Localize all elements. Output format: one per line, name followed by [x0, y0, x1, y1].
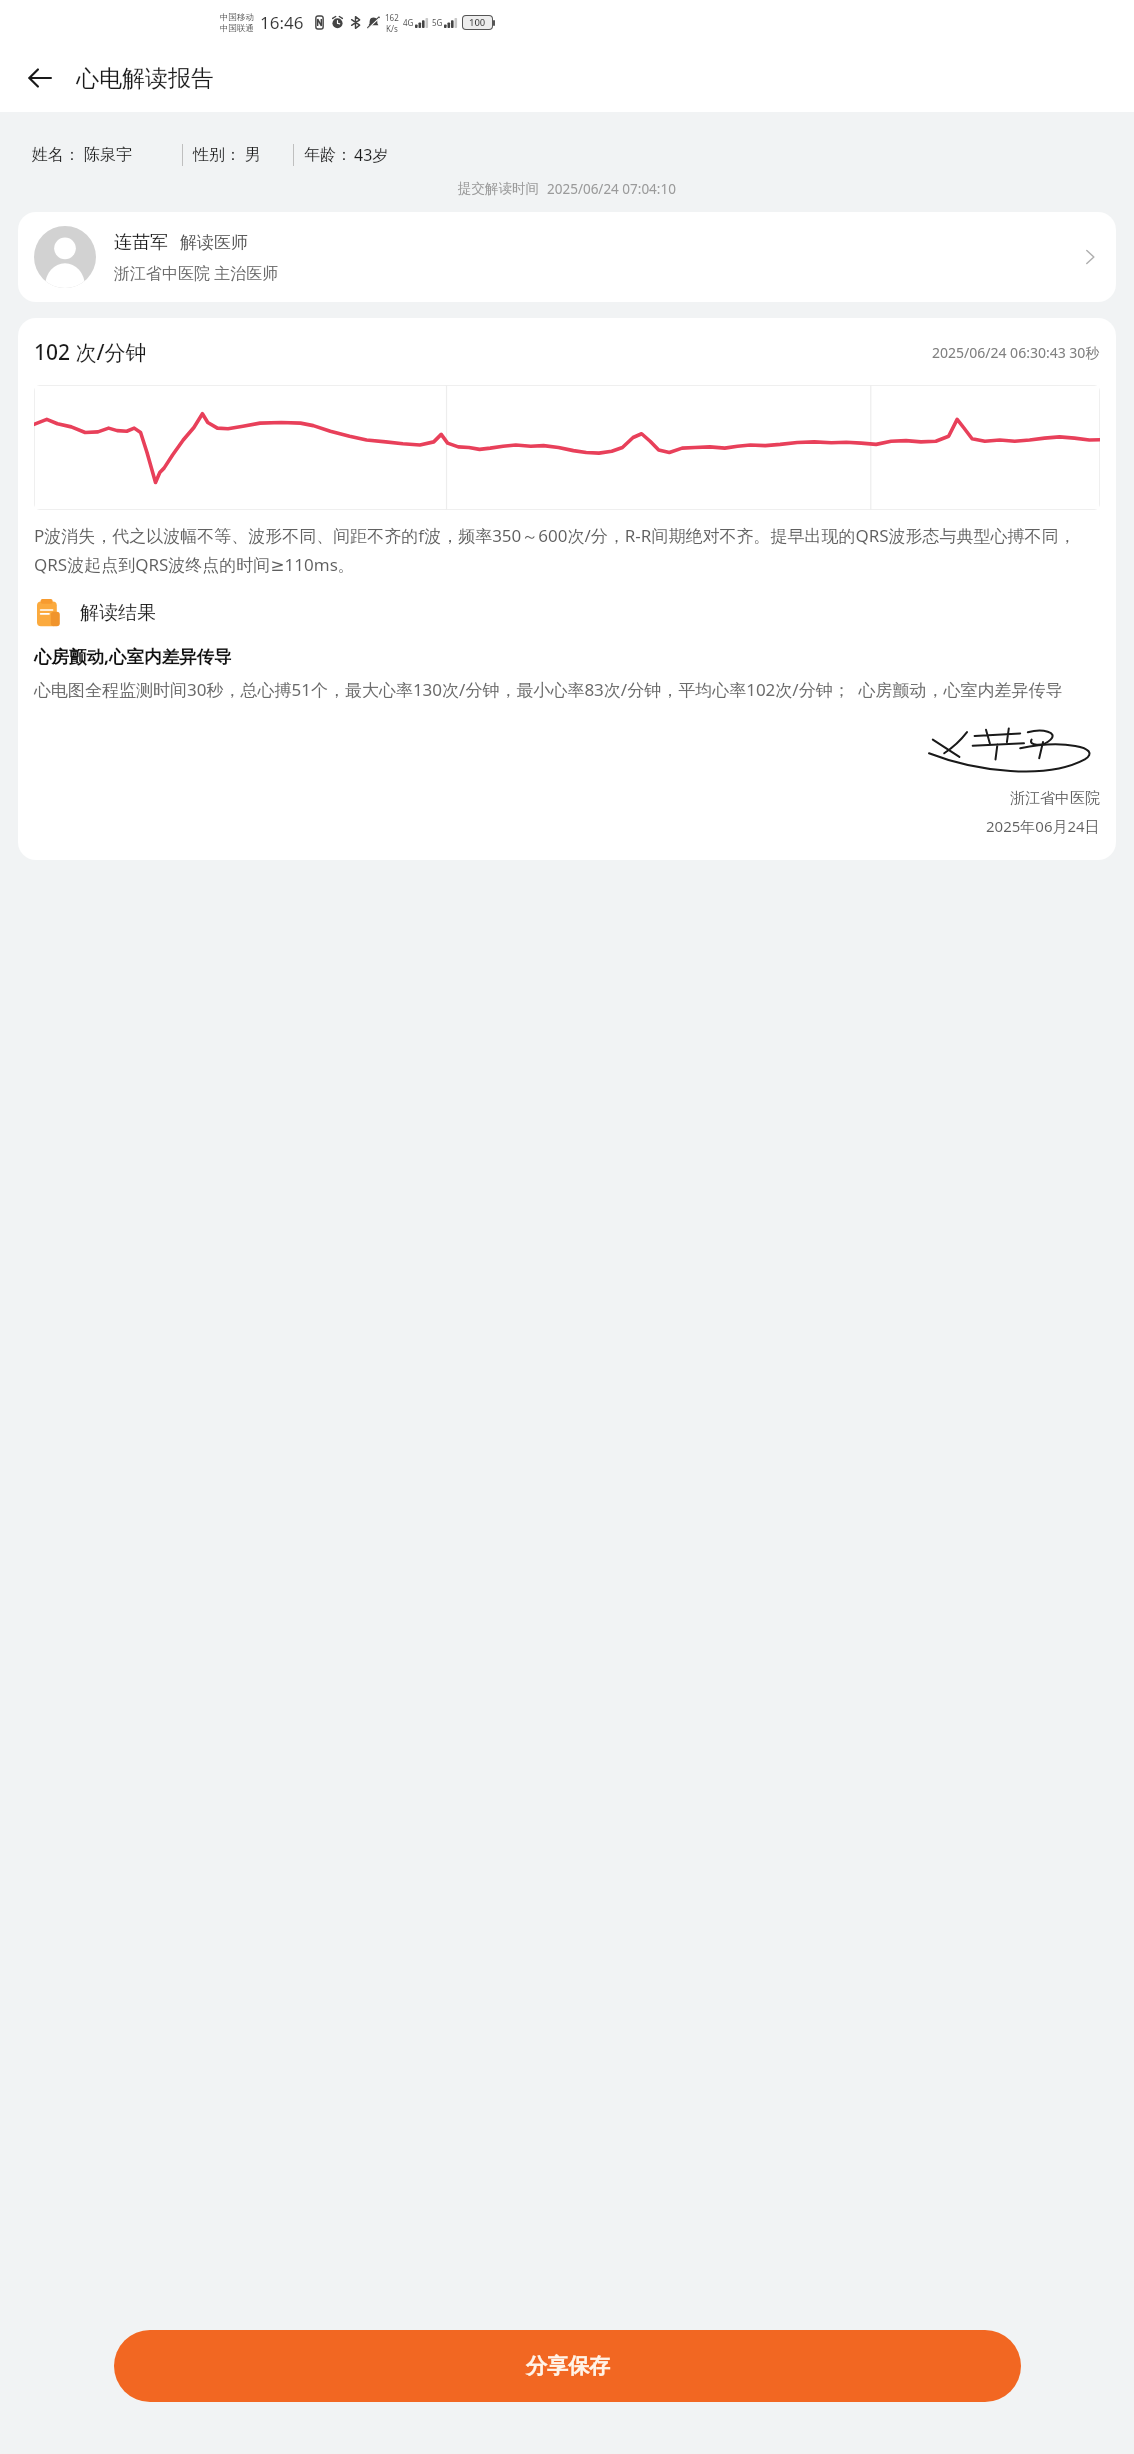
staticText: 提交解读时间 — [458, 180, 539, 197]
staticText: 中国移动 — [220, 12, 254, 23]
staticText: 心房颤动,心室内差异传导 — [34, 644, 232, 668]
staticText: 2025年06月24日 — [986, 816, 1100, 836]
staticText: 男 — [245, 145, 261, 165]
staticText: 102 次/分钟 — [34, 338, 147, 367]
staticText: 5G — [432, 17, 443, 28]
button[interactable]: 连苗军 — [18, 212, 1116, 302]
staticText: 姓名： — [32, 145, 80, 165]
staticText: 4G — [403, 17, 414, 28]
staticText: 162 — [385, 12, 399, 23]
staticText: 100 — [469, 16, 486, 29]
staticText: 年龄： — [304, 145, 352, 165]
staticText: 43岁 — [354, 144, 389, 166]
staticText: 解读结果 — [80, 601, 156, 625]
button[interactable]: 分享保存 — [114, 2330, 1021, 2402]
staticText: 2025/06/24 06:30:43 30秒 — [932, 343, 1100, 362]
button[interactable]: Back — [18, 56, 62, 100]
staticText: 性别： — [193, 145, 241, 165]
staticText: 解读医师 — [180, 232, 248, 253]
staticText: 浙江省中医院 主治医师 — [114, 262, 279, 284]
staticText: P波消失，代之以波幅不等、波形不同、间距不齐的f波，频率350～600次/分，R… — [34, 524, 1100, 576]
staticText: 心电解读报告 — [76, 64, 214, 93]
staticText: 连苗军 — [114, 231, 168, 254]
staticText: 浙江省中医院 — [1010, 789, 1100, 808]
staticText: 中国联通 — [220, 23, 254, 34]
staticText: 陈泉宇 — [84, 145, 132, 165]
staticText: K/s — [386, 23, 398, 34]
staticText: 心电图全程监测时间30秒，总心搏51个，最大心率130次/分钟，最小心率83次/… — [34, 678, 1063, 701]
staticText: 2025/06/24 07:04:10 — [547, 180, 676, 198]
staticText: 分享保存 — [526, 2353, 610, 2379]
staticText: 16:46 — [260, 11, 304, 34]
